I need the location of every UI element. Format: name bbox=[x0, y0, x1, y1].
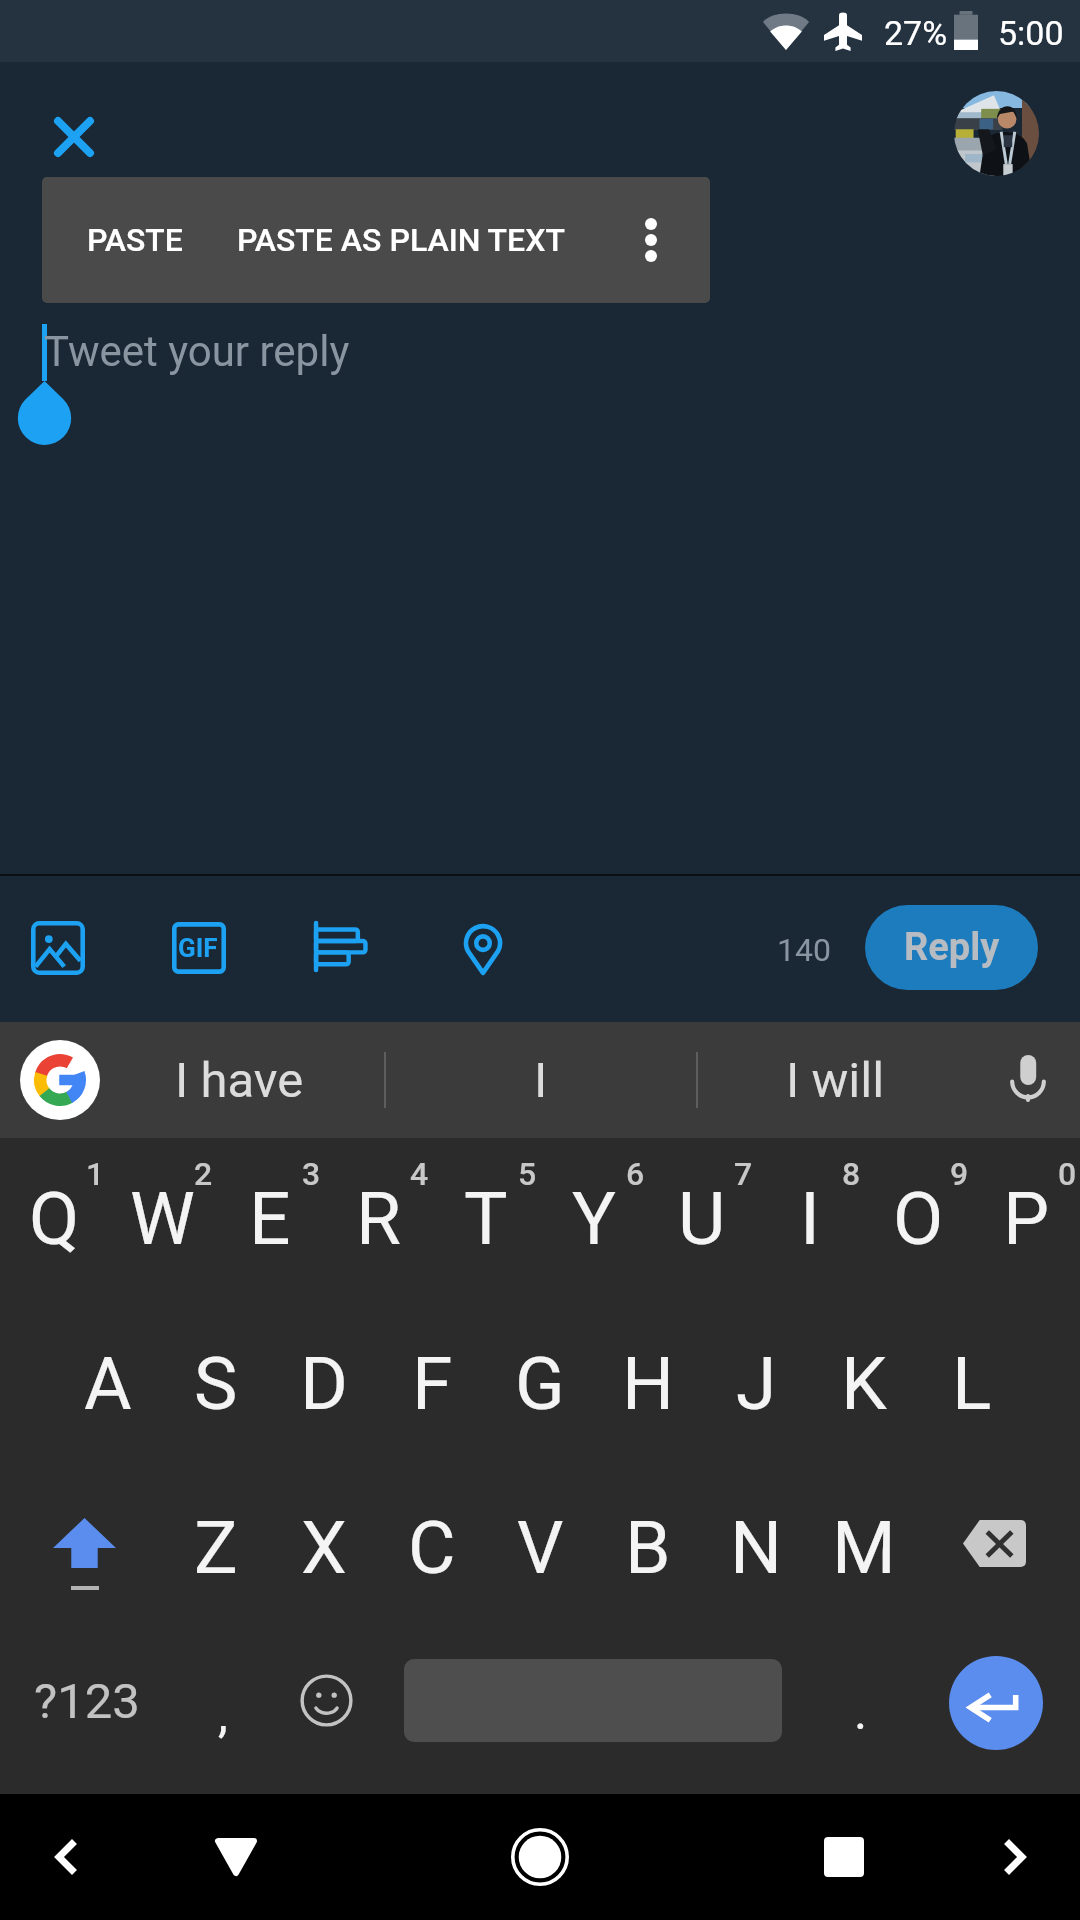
staticText: Reply bbox=[904, 925, 1000, 970]
staticText: M bbox=[832, 1505, 896, 1591]
staticText: 7 bbox=[734, 1155, 753, 1193]
staticText: R bbox=[356, 1176, 401, 1262]
staticText: 6 bbox=[626, 1155, 645, 1193]
staticText: Y bbox=[572, 1176, 616, 1262]
staticText: 0 bbox=[1058, 1155, 1077, 1193]
staticText: 27% bbox=[884, 13, 948, 53]
button[interactable]: Q bbox=[0, 1138, 108, 1302]
staticText: V bbox=[517, 1505, 564, 1591]
button[interactable]: Close bbox=[30, 93, 118, 181]
button[interactable]: K bbox=[810, 1302, 918, 1466]
button[interactable]: PASTE bbox=[87, 177, 225, 303]
staticText: X bbox=[301, 1505, 347, 1591]
button[interactable]: M bbox=[810, 1466, 918, 1630]
button[interactable]: Add GIF bbox=[159, 908, 239, 988]
staticText: E bbox=[249, 1176, 291, 1262]
button[interactable]: Hide keyboard bbox=[166, 1794, 306, 1920]
button[interactable]: ?123 bbox=[0, 1630, 172, 1794]
button[interactable]: . bbox=[800, 1630, 920, 1794]
staticText: C bbox=[408, 1505, 456, 1591]
button[interactable]: W bbox=[108, 1138, 216, 1302]
staticText: O bbox=[893, 1176, 944, 1262]
staticText: D bbox=[300, 1341, 348, 1427]
staticText: 4 bbox=[410, 1155, 429, 1193]
staticText: I bbox=[534, 1052, 548, 1109]
staticText: H bbox=[622, 1341, 675, 1427]
button[interactable]: Backspace bbox=[911, 1466, 1080, 1630]
button[interactable]: D bbox=[270, 1302, 378, 1466]
button[interactable]: H bbox=[594, 1302, 702, 1466]
staticText: I have bbox=[175, 1052, 304, 1109]
button[interactable]: , bbox=[172, 1630, 272, 1794]
staticText: I will bbox=[786, 1052, 885, 1109]
button[interactable]: Back bbox=[0, 1794, 135, 1920]
button[interactable]: Reply bbox=[865, 905, 1038, 990]
button[interactable]: Y bbox=[540, 1138, 648, 1302]
staticText: G bbox=[515, 1341, 565, 1427]
staticText: Q bbox=[29, 1176, 80, 1262]
button[interactable]: C bbox=[378, 1466, 486, 1630]
staticText: F bbox=[412, 1341, 453, 1427]
staticText: 2 bbox=[194, 1155, 213, 1193]
staticText: PASTE bbox=[87, 221, 183, 259]
staticText: 3 bbox=[302, 1155, 321, 1193]
button[interactable]: Add poll bbox=[300, 908, 380, 988]
staticText: ?123 bbox=[34, 1673, 140, 1730]
staticText: GIF bbox=[178, 933, 218, 963]
staticText: N bbox=[730, 1505, 783, 1591]
button[interactable]: G bbox=[486, 1302, 594, 1466]
button[interactable]: I have bbox=[113, 1022, 365, 1138]
button[interactable]: E bbox=[216, 1138, 324, 1302]
button[interactable]: Google bbox=[20, 1040, 100, 1120]
staticText: K bbox=[841, 1341, 887, 1427]
staticText: 9 bbox=[950, 1155, 969, 1193]
button[interactable]: More options bbox=[619, 177, 682, 303]
button[interactable]: X bbox=[270, 1466, 378, 1630]
button[interactable]: P bbox=[972, 1138, 1080, 1302]
button[interactable]: L bbox=[918, 1302, 1026, 1466]
button[interactable]: Home bbox=[470, 1794, 610, 1920]
staticText: 1 bbox=[86, 1155, 105, 1193]
button[interactable]: Add location bbox=[443, 908, 523, 988]
button[interactable]: B bbox=[594, 1466, 702, 1630]
button[interactable]: Add photo bbox=[18, 908, 98, 988]
staticText: J bbox=[736, 1341, 777, 1427]
button[interactable]: Shift bbox=[0, 1466, 169, 1630]
button[interactable]: U bbox=[648, 1138, 756, 1302]
button[interactable]: PASTE AS PLAIN TEXT bbox=[237, 177, 567, 303]
staticText: B bbox=[625, 1505, 671, 1591]
button[interactable]: A bbox=[54, 1302, 162, 1466]
button[interactable]: Forward bbox=[945, 1794, 1080, 1920]
button[interactable]: O bbox=[864, 1138, 972, 1302]
staticText: PASTE AS PLAIN TEXT bbox=[237, 221, 565, 259]
button[interactable]: Profile picture bbox=[954, 91, 1039, 176]
button[interactable]: Emoji bbox=[272, 1630, 380, 1794]
button[interactable]: J bbox=[702, 1302, 810, 1466]
button[interactable]: R bbox=[324, 1138, 432, 1302]
button[interactable]: I bbox=[386, 1022, 696, 1138]
staticText: W bbox=[130, 1176, 195, 1262]
button[interactable]: Z bbox=[162, 1466, 270, 1630]
button[interactable]: I bbox=[756, 1138, 864, 1302]
staticText: I bbox=[800, 1176, 820, 1262]
staticText: L bbox=[952, 1341, 992, 1427]
staticText: Z bbox=[194, 1505, 238, 1591]
staticText: S bbox=[194, 1341, 238, 1427]
staticText: P bbox=[1003, 1176, 1050, 1262]
button[interactable]: V bbox=[486, 1466, 594, 1630]
staticText: T bbox=[464, 1176, 508, 1262]
button[interactable]: I will bbox=[698, 1022, 973, 1138]
staticText: . bbox=[854, 1683, 868, 1742]
button[interactable]: Enter bbox=[949, 1656, 1043, 1750]
button[interactable]: Recent apps bbox=[774, 1794, 914, 1920]
staticText: 5 bbox=[518, 1155, 537, 1193]
button[interactable]: Voice input bbox=[983, 1050, 1073, 1110]
staticText: 140 bbox=[777, 931, 831, 969]
staticText: 5:00 bbox=[998, 13, 1064, 53]
button[interactable]: S bbox=[162, 1302, 270, 1466]
staticText: Tweet your reply bbox=[44, 327, 350, 376]
button[interactable]: T bbox=[432, 1138, 540, 1302]
button[interactable]: F bbox=[378, 1302, 486, 1466]
button[interactable]: N bbox=[702, 1466, 810, 1630]
